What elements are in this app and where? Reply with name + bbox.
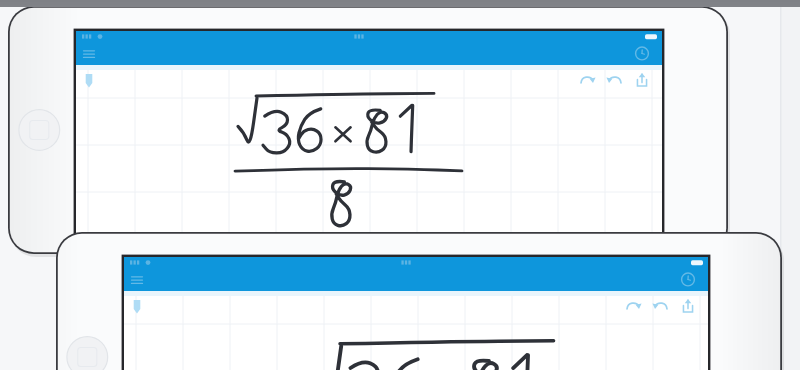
button[interactable]: Two tablets showing a handwriting calcul… — [0, 0, 800, 370]
